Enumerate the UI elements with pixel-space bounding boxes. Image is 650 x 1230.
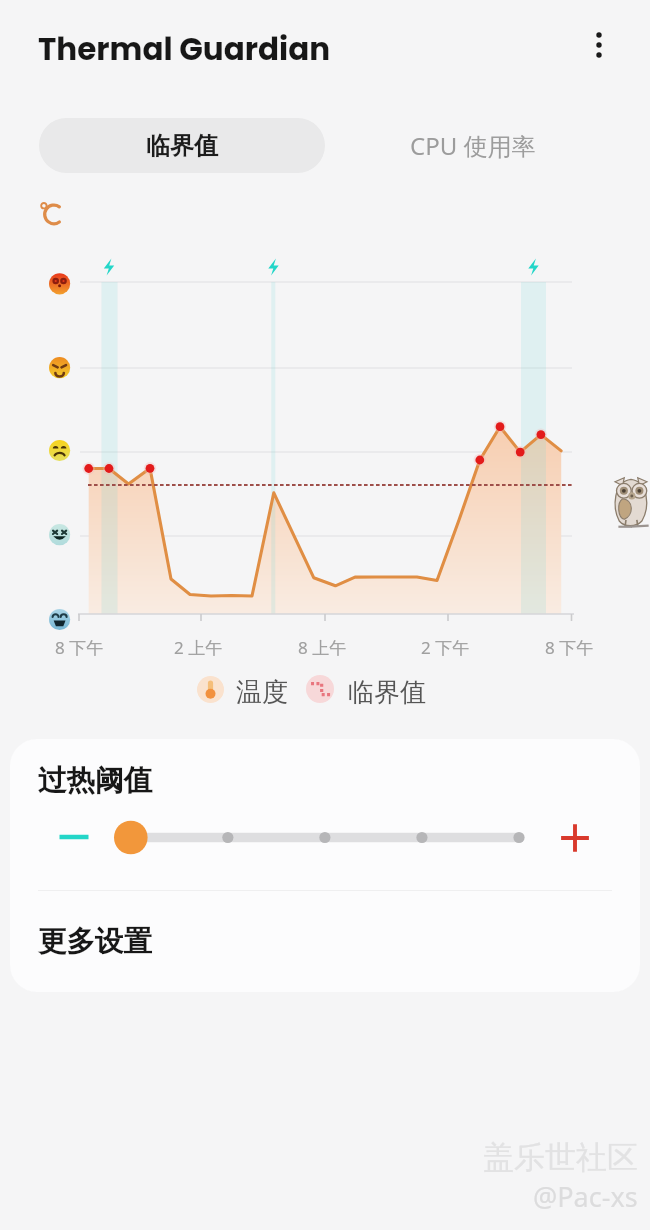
button[interactable]: CPU 使用率: [325, 118, 620, 173]
button[interactable]: 更多设置: [10, 891, 640, 992]
staticText: 温度: [236, 676, 288, 709]
button[interactable]: More options: [570, 16, 627, 73]
staticText: 8 上午: [298, 636, 347, 659]
staticText: @Pac-xs: [533, 1178, 638, 1215]
button[interactable]: [306, 675, 334, 703]
staticText: 临界值: [348, 676, 426, 709]
button[interactable]: Increase threshold: [552, 815, 598, 861]
staticText: 8 下午: [55, 636, 104, 659]
staticText: 2 下午: [421, 636, 470, 659]
staticText: 2 上午: [174, 636, 223, 659]
staticText: 盖乐世社区: [483, 1138, 638, 1177]
staticText: 更多设置: [38, 924, 152, 960]
button[interactable]: 临界值: [39, 118, 325, 173]
staticText: Thermal Guardian: [38, 27, 331, 70]
staticText: 8 下午: [545, 636, 594, 659]
staticText: CPU 使用率: [410, 129, 536, 162]
button[interactable]: Decrease threshold: [52, 815, 96, 859]
staticText: 过热阈值: [38, 763, 152, 799]
staticText: 临界值: [146, 131, 218, 161]
button[interactable]: [197, 676, 224, 703]
